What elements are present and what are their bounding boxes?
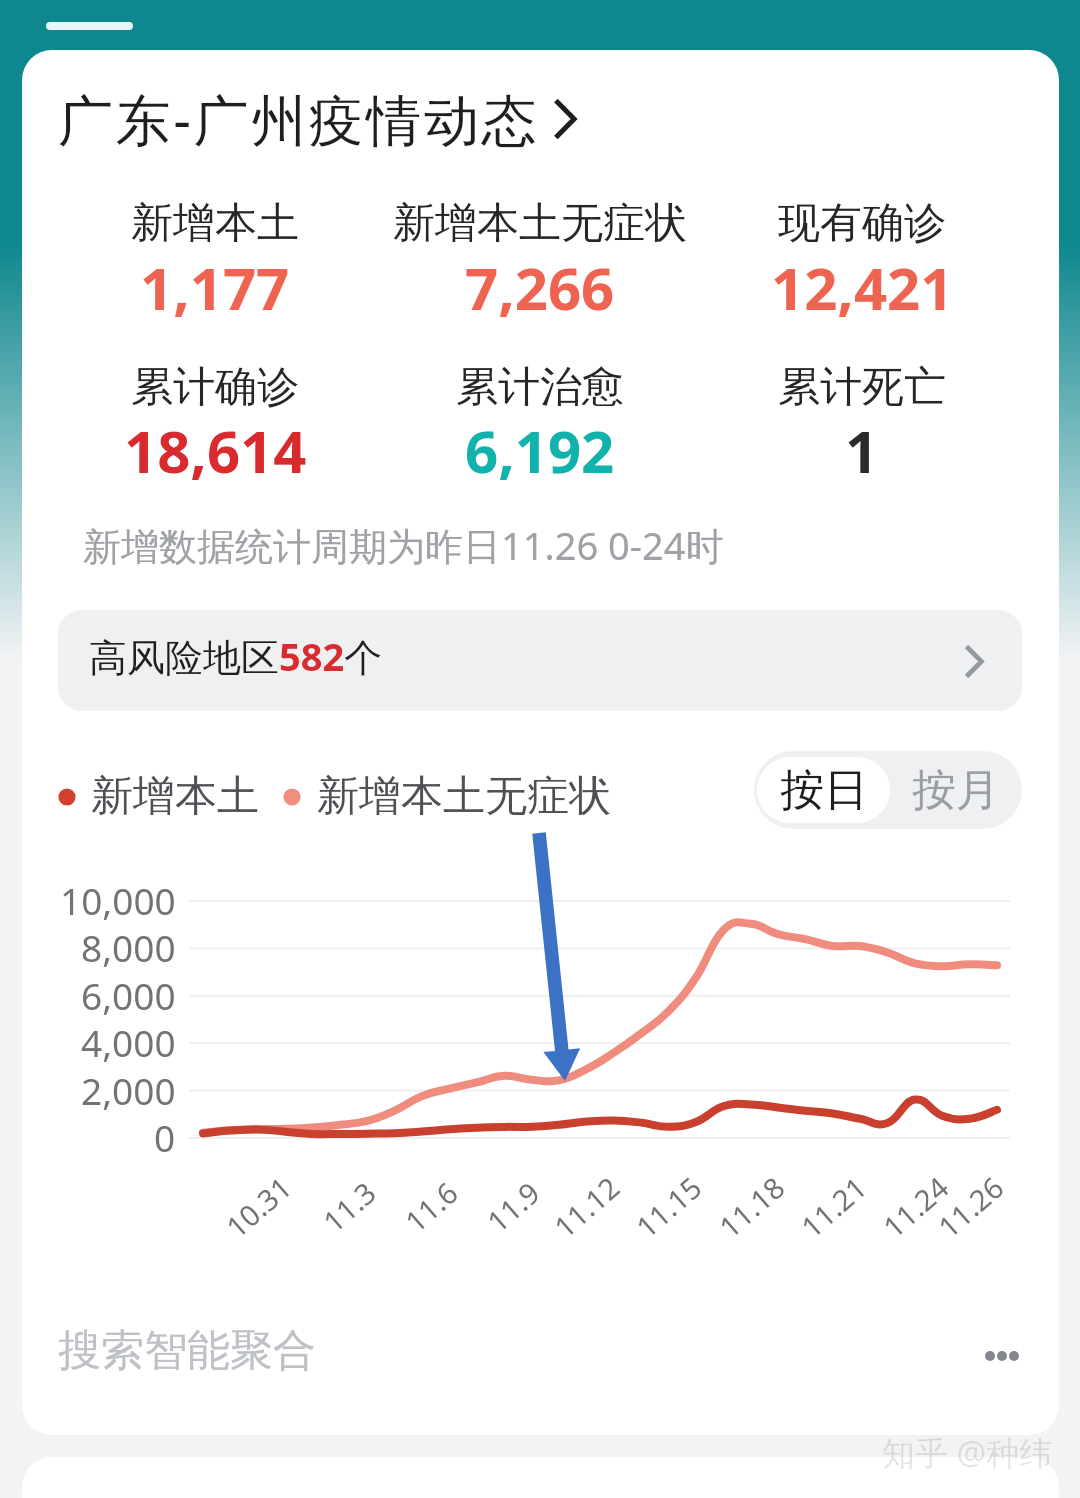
staticText: 现有确诊 [778, 197, 946, 250]
staticText: 累计确诊 [131, 361, 299, 414]
staticText: 7,266 [465, 248, 615, 327]
staticText: 新增数据统计周期为昨日11.26 0-24时 [83, 519, 724, 571]
button[interactable]: 按月 [890, 751, 1022, 829]
staticText: 2,000 [81, 1065, 176, 1115]
staticText: 新增本土无症状 [393, 197, 687, 250]
staticText: 累计死亡 [778, 361, 946, 414]
button[interactable]: 按日 [757, 757, 890, 823]
staticText: 10.31 [217, 1167, 300, 1246]
staticText: 6,192 [465, 411, 615, 490]
staticText: 新增本土无症状 [317, 770, 611, 823]
staticText: 累计治愈 [456, 361, 624, 414]
staticText: 11.6 [396, 1173, 466, 1240]
button[interactable]: More options [972, 1326, 1032, 1386]
staticText: 12,421 [771, 248, 954, 327]
staticText: 1 [845, 411, 879, 490]
staticText: 1,177 [140, 248, 290, 327]
staticText: 4,000 [81, 1017, 176, 1067]
staticText: 10,000 [60, 875, 176, 925]
staticText: 按日 [780, 763, 868, 818]
staticText: 11.3 [314, 1173, 384, 1240]
staticText: 广东-广州疫情动态 [58, 81, 540, 156]
staticText: 新增本土 [91, 770, 259, 823]
staticText: 11.9 [478, 1173, 548, 1240]
staticText: 11.12 [545, 1167, 628, 1246]
staticText: 新增本土 [131, 197, 299, 250]
staticText: 11.24 [874, 1167, 957, 1246]
button[interactable]: 广东-广州疫情动态 [58, 81, 577, 156]
staticText: 高风险地区582个 [89, 630, 383, 682]
staticText: 按月 [912, 763, 1000, 818]
staticText: 11.26 [929, 1167, 1012, 1246]
staticText: 6,000 [81, 970, 176, 1020]
staticText: 8,000 [81, 922, 176, 972]
staticText: 11.18 [710, 1167, 793, 1246]
staticText: 11.21 [792, 1167, 875, 1246]
staticText: 18,614 [124, 411, 307, 490]
staticText: 知乎 @种纬 [882, 1430, 1053, 1475]
button[interactable]: 搜索智能聚合 [58, 1324, 316, 1378]
staticText: 11.15 [627, 1167, 710, 1246]
staticText: 0 [154, 1112, 176, 1162]
button[interactable]: 高风险地区582个 [58, 610, 1022, 711]
